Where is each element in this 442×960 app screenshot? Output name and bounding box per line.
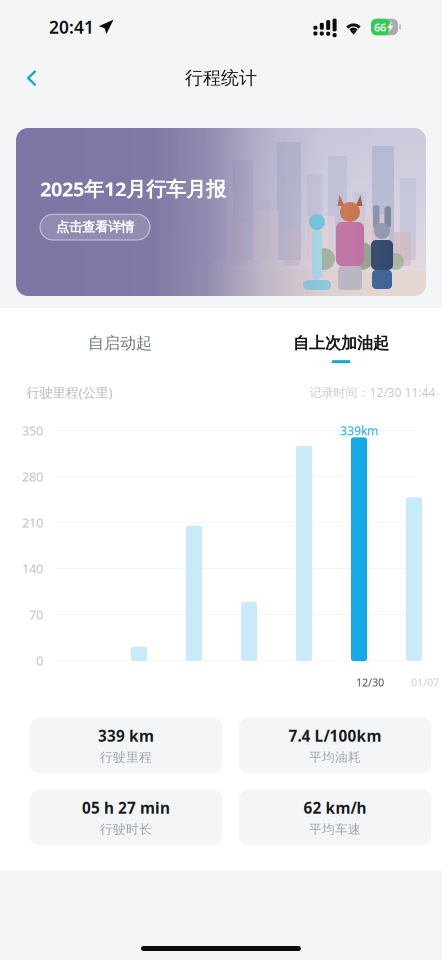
staticText: 210: [22, 514, 43, 531]
staticText: 62 km/h: [303, 797, 366, 818]
staticText: 平均油耗: [309, 749, 361, 765]
button[interactable]: 自上次加油起: [230, 328, 442, 368]
button[interactable]: 7.4 L/100km: [238, 717, 431, 773]
staticText: 自启动起: [88, 333, 152, 353]
staticText: 行程统计: [185, 67, 257, 89]
staticText: 0: [36, 652, 43, 669]
staticText: 70: [29, 606, 43, 623]
staticText: 280: [22, 468, 43, 485]
staticText: 记录时间：12/30 11:44: [309, 384, 435, 400]
staticText: 行驶时长: [100, 821, 152, 837]
staticText: 12/30: [356, 675, 384, 690]
staticText: 7.4 L/100km: [288, 725, 381, 746]
staticText: 140: [22, 560, 43, 577]
staticText: 05 h 27 min: [82, 797, 170, 818]
staticText: 20:41: [49, 15, 94, 39]
staticText: 行驶里程(公里): [26, 383, 112, 401]
button[interactable]: 自启动起: [9, 328, 230, 368]
staticText: 339km: [340, 422, 378, 439]
staticText: 自上次加油起: [293, 333, 389, 353]
staticText: 平均车速: [309, 821, 361, 837]
staticText: 339 km: [98, 725, 154, 746]
staticText: 66: [374, 19, 386, 35]
button[interactable]: 2025年12月行车月报: [16, 128, 426, 296]
staticText: 01/07: [411, 675, 439, 690]
button[interactable]: 339 km: [29, 717, 222, 773]
button[interactable]: 05 h 27 min: [29, 789, 222, 845]
button[interactable]: Back: [12, 56, 52, 100]
button[interactable]: 62 km/h: [238, 789, 431, 845]
staticText: 2025年12月行车月报: [40, 175, 226, 202]
staticText: 350: [22, 422, 43, 439]
staticText: 点击查看详情: [56, 219, 134, 235]
staticText: 行驶里程: [100, 749, 152, 765]
